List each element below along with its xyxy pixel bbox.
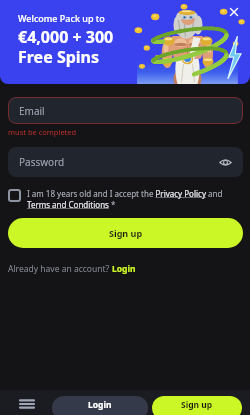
staticText: €4,000 + 300 Free Spins [18, 26, 114, 67]
staticText: Welcome Pack up to [18, 12, 105, 24]
staticText: Login [112, 263, 136, 275]
staticText: must be completed [8, 127, 77, 137]
staticText: Login [88, 399, 112, 411]
button[interactable]: Sign up [8, 218, 243, 248]
button[interactable]: Login [112, 263, 136, 275]
button[interactable]: Sign up [152, 396, 242, 415]
staticText: Sign up [181, 399, 213, 411]
button[interactable]: Menu [16, 393, 38, 415]
button[interactable]: Email [8, 97, 243, 124]
staticText: Password [19, 155, 65, 169]
button[interactable]: Login [52, 396, 148, 415]
button[interactable]: Show password [219, 156, 232, 169]
button[interactable]: Accept terms [8, 189, 21, 202]
staticText: I am 18 years old and I accept the Priva… [27, 188, 243, 210]
staticText: Already have an account? [8, 263, 112, 275]
staticText: Email [19, 104, 45, 118]
staticText: Sign up [109, 227, 143, 239]
button[interactable]: Close [226, 4, 242, 20]
button[interactable]: Password [8, 147, 243, 177]
